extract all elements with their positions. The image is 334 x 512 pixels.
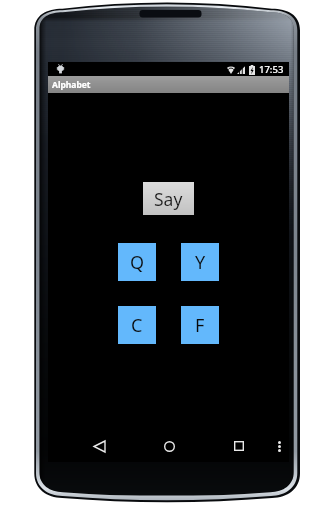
button[interactable]: Back [87, 434, 111, 458]
button[interactable]: C [118, 306, 156, 344]
staticText: F [195, 313, 205, 338]
button[interactable]: Home [157, 434, 181, 458]
button[interactable]: Say [143, 182, 194, 215]
staticText: Say [154, 187, 183, 211]
staticText: C [131, 313, 143, 338]
staticText: 17:53 [259, 63, 284, 76]
staticText: Q [130, 250, 145, 275]
staticText: Alphabet [52, 79, 91, 91]
button[interactable]: F [181, 306, 219, 344]
button[interactable]: Recents [227, 434, 251, 458]
staticText: Y [195, 250, 206, 275]
button[interactable]: Q [118, 243, 156, 281]
button[interactable]: Y [181, 243, 219, 281]
button[interactable]: More options [269, 436, 289, 456]
